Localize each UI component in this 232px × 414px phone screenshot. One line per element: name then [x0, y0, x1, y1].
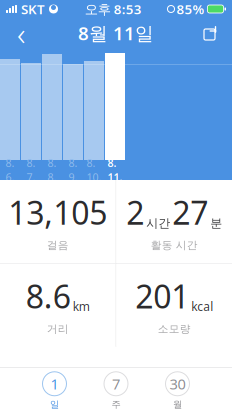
staticText: 8. 9. — [68, 156, 77, 184]
staticText: 주 — [111, 399, 120, 410]
staticText: 활동 시간 — [151, 239, 198, 252]
staticText: 거리 — [47, 322, 69, 335]
staticText: 월 — [173, 399, 182, 410]
staticText: 1 — [50, 374, 58, 393]
staticText: 27 — [172, 191, 208, 234]
staticText: 8월 11일 — [78, 21, 154, 45]
staticText: 201 — [135, 275, 189, 317]
button[interactable]: Share — [194, 18, 228, 48]
staticText: 시간 — [146, 216, 170, 231]
staticText: 8. 11. — [107, 156, 122, 184]
staticText: 소모량 — [158, 322, 191, 335]
staticText: 7 — [112, 374, 120, 393]
staticText: SKT — [21, 0, 45, 18]
button[interactable]: Back — [4, 18, 38, 48]
staticText: 8. 7. — [26, 156, 35, 184]
button[interactable]: 7 — [93, 370, 139, 412]
staticText: 일 — [50, 399, 59, 410]
staticText: 85% — [176, 0, 204, 18]
staticText: 8. 10. — [86, 156, 101, 184]
staticText: 8. 6. — [5, 156, 14, 184]
button[interactable]: 1 — [31, 370, 77, 412]
staticText: 오후 8:53 — [85, 0, 142, 18]
staticText: 8. 8. — [47, 156, 56, 184]
staticText: 2 — [126, 191, 144, 234]
button[interactable]: 30 — [154, 370, 200, 412]
staticText: 30 — [169, 374, 185, 393]
staticText: 분 — [210, 216, 222, 231]
staticText: km — [73, 298, 90, 314]
staticText: 걸음 — [47, 239, 69, 252]
staticText: 13,105 — [8, 191, 107, 234]
staticText: 8.6 — [26, 275, 71, 317]
staticText: kcal — [191, 298, 213, 314]
staticText: ‹ — [17, 12, 25, 54]
